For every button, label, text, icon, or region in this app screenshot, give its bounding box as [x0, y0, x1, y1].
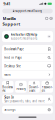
staticText: Sync passwords, tabs, and more [4, 99, 45, 103]
staticText: Find in Page [4, 56, 22, 59]
staticText: History [16, 87, 25, 91]
staticText: More [4, 73, 11, 76]
button[interactable]: Bookmarks [2, 81, 14, 93]
button[interactable]: More [2, 70, 53, 79]
button[interactable]: Sign In [2, 95, 53, 104]
staticText: Mozilla [3, 16, 16, 21]
button[interactable]: Downloads [28, 81, 40, 93]
staticText: Firefox for iOS Help [11, 33, 38, 36]
staticText: support.mozilla.org [15, 9, 42, 13]
staticText: Sign In [4, 96, 14, 99]
staticText: Bookmark Page [4, 47, 24, 51]
staticText: Settings [4, 108, 15, 111]
staticText: Passwords [42, 85, 53, 92]
button[interactable]: Desktop Site [2, 62, 53, 70]
button[interactable]: Settings [2, 106, 53, 114]
button[interactable]: History [15, 81, 27, 93]
staticText: Downloads [29, 85, 39, 92]
button[interactable]: Passwords [41, 81, 53, 93]
button[interactable]: Bookmark Page [2, 45, 53, 53]
staticText: Bookmarks [2, 85, 13, 92]
staticText: support.mozilla.org [11, 37, 38, 40]
staticText: 9:41 [3, 1, 10, 6]
button[interactable]: Find in Page [2, 53, 53, 62]
staticText: Desktop Site [4, 64, 21, 68]
button[interactable]: Firefox for iOS Help [2, 31, 53, 42]
button[interactable]: support.mozilla.org [2, 9, 53, 13]
staticText: Support [3, 21, 21, 27]
